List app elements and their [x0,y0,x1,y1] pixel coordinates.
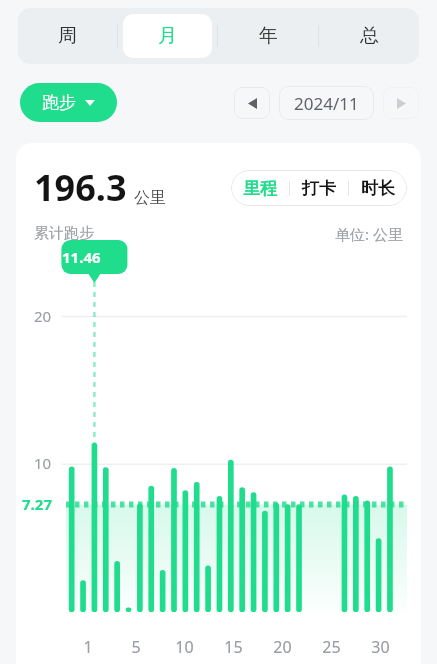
staticText: 20 [34,306,52,326]
staticText: 5 [131,636,141,658]
button[interactable]: Previous month [234,87,270,119]
staticText: 7.27 [22,494,52,514]
staticText: 单位: 公里 [335,224,403,244]
staticText: 20 [273,636,292,658]
staticText: 2024/11 [294,92,359,115]
button[interactable]: 里程 [231,170,289,206]
button[interactable]: Next month [383,87,419,119]
staticText: 里程 [243,178,277,199]
button[interactable]: 总 [324,14,414,58]
button[interactable]: 月 [123,14,212,58]
button[interactable]: 周 [23,14,112,58]
staticText: 累计跑步 [34,224,94,243]
staticText: 月 [158,24,177,48]
staticText: 10 [175,636,194,658]
staticText: 公里 [134,188,166,208]
button[interactable]: 时长 [349,170,407,206]
staticText: 打卡 [302,178,336,199]
button[interactable]: 打卡 [290,170,348,206]
staticText: 196.3 [34,163,127,212]
staticText: 11.46 [62,247,101,267]
staticText: 15 [224,636,243,658]
button[interactable]: 年 [223,14,313,58]
staticText: 时长 [361,178,395,199]
staticText: 跑步 [42,92,76,113]
button[interactable]: 2024/11 [279,86,374,120]
staticText: 年 [259,24,278,48]
staticText: 总 [360,24,379,48]
staticText: 10 [34,453,52,473]
staticText: 25 [322,636,341,658]
button[interactable]: 跑步 [20,83,117,122]
staticText: 1 [83,636,93,658]
staticText: 周 [58,24,77,48]
staticText: 30 [371,636,390,658]
